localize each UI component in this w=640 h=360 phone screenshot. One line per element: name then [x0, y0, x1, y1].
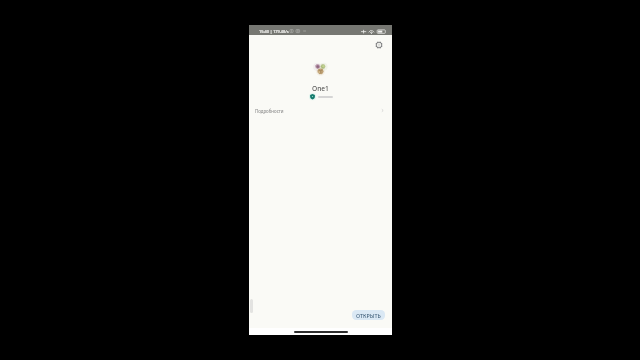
staticText: Подробности [255, 108, 284, 114]
button[interactable]: Settings [371, 37, 387, 53]
staticText: 15:40 | 179.48/s [259, 29, 289, 34]
button[interactable]: Verified by Play Protect [309, 93, 333, 100]
button[interactable]: ОТКРЫТЬ [352, 310, 385, 320]
button[interactable]: Edge panel handle [250, 299, 253, 313]
staticText: One1 [312, 84, 329, 93]
staticText: ОТКРЫТЬ [356, 312, 381, 319]
button[interactable]: Подробности [249, 104, 392, 117]
